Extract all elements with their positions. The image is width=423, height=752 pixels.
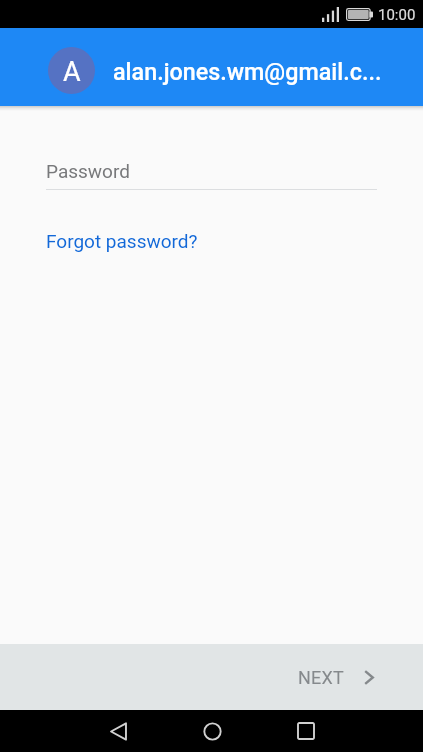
button[interactable]: A xyxy=(0,28,423,106)
staticText: Forgot password? xyxy=(46,230,198,252)
button[interactable]: Password xyxy=(46,160,377,190)
button[interactable]: NEXT xyxy=(274,655,423,700)
staticText: A xyxy=(63,56,81,88)
staticText: NEXT xyxy=(298,667,344,688)
staticText: 10:00 xyxy=(378,6,416,24)
button[interactable]: Back xyxy=(71,710,165,752)
button[interactable]: Recents xyxy=(259,710,353,752)
button[interactable]: Forgot password? xyxy=(46,230,198,252)
button[interactable]: Home xyxy=(165,710,259,752)
staticText: alan.jones.wm@gmail.c... xyxy=(113,58,382,85)
staticText: Password xyxy=(46,160,130,182)
